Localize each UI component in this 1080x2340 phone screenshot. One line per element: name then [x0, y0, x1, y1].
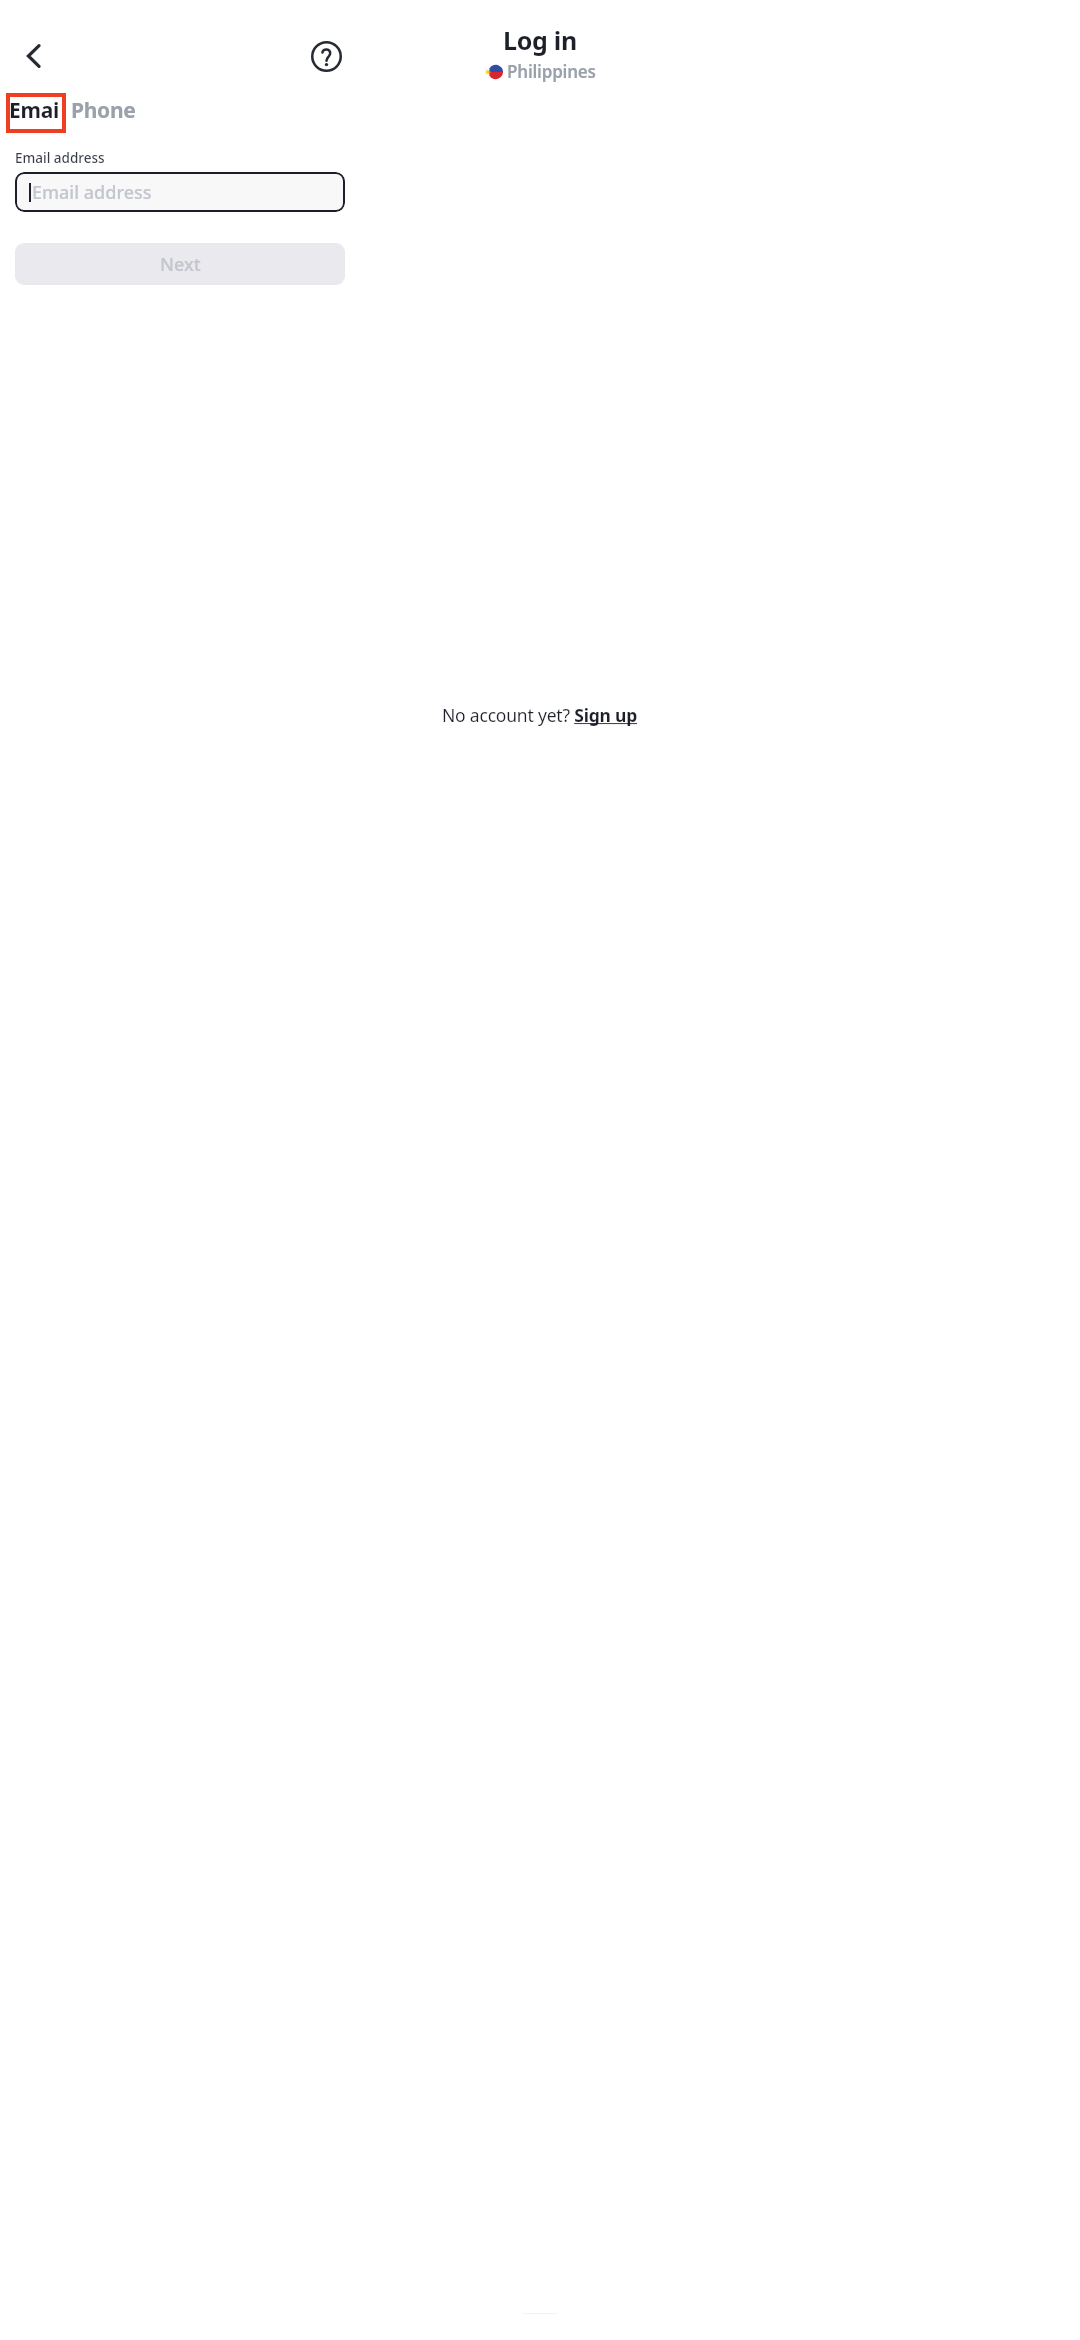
button[interactable]: Email	[9, 96, 62, 129]
button[interactable]: Help	[296, 26, 356, 86]
button[interactable]: No account yet? Sign up	[438, 699, 642, 731]
staticText: No account yet? Sign up	[442, 703, 638, 727]
staticText: Email	[9, 96, 62, 129]
button[interactable]: Phone	[71, 96, 136, 128]
staticText: Log in	[503, 23, 577, 57]
staticText: Next	[160, 252, 201, 277]
button[interactable]: Email address	[15, 172, 345, 212]
button[interactable]: Next	[15, 243, 345, 285]
staticText: Philippines	[507, 60, 596, 83]
staticText: Email address	[32, 180, 152, 205]
button[interactable]: Back	[4, 26, 64, 86]
staticText: Phone	[71, 96, 136, 125]
staticText: Email address	[15, 149, 105, 167]
